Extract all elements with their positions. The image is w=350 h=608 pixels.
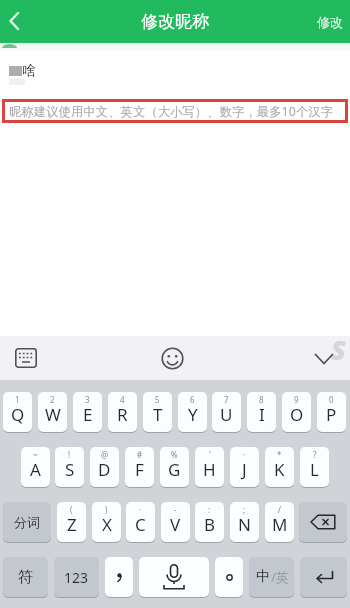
button[interactable]: /	[265, 502, 294, 542]
staticText: #	[137, 449, 143, 460]
button[interactable]	[306, 344, 342, 374]
staticText: :	[208, 504, 211, 515]
staticText: N	[238, 513, 251, 536]
staticText: T	[153, 403, 163, 426]
staticText: M	[272, 513, 288, 536]
button[interactable]: 修改	[306, 0, 350, 43]
staticText: 6	[190, 394, 195, 405]
staticText: ;	[243, 504, 246, 515]
staticText: /	[278, 504, 281, 515]
staticText: 9	[294, 394, 299, 405]
staticText: F	[135, 458, 144, 481]
button[interactable]	[139, 557, 209, 597]
staticText: V	[170, 513, 181, 536]
button[interactable]	[0, 0, 38, 43]
staticText: 8	[259, 394, 264, 405]
staticText: G	[168, 458, 181, 481]
staticText: %	[171, 449, 178, 460]
staticText: 啥	[22, 62, 36, 80]
staticText: 1	[15, 394, 20, 405]
staticText: 4	[120, 394, 125, 405]
button[interactable]: 6	[178, 392, 207, 432]
staticText: K	[274, 458, 285, 481]
button[interactable]: 符	[3, 557, 48, 597]
staticText: ·	[243, 449, 246, 460]
button[interactable]: -	[161, 502, 190, 542]
button[interactable]: #	[125, 447, 154, 487]
button[interactable]	[300, 557, 347, 597]
staticText: W	[45, 403, 61, 426]
staticText: *	[277, 449, 282, 460]
staticText: S	[65, 458, 75, 481]
staticText: -	[174, 504, 177, 515]
staticText: '	[209, 449, 211, 460]
staticText: 123	[64, 568, 89, 587]
button[interactable]: 8	[247, 392, 276, 432]
button[interactable]	[0, 53, 350, 89]
staticText: Q	[11, 403, 25, 426]
button[interactable]: 7	[212, 392, 241, 432]
staticText: R	[117, 403, 128, 426]
button[interactable]: *	[265, 447, 294, 487]
button[interactable]: 0	[317, 392, 346, 432]
staticText: (	[70, 504, 73, 515]
staticText: )	[105, 504, 108, 515]
button[interactable]: 分词	[3, 502, 51, 542]
staticText: E	[83, 403, 93, 426]
button[interactable]: !	[55, 447, 84, 487]
staticText: B	[204, 513, 216, 536]
staticText: 修改昵称	[141, 11, 209, 32]
button[interactable]: ·	[126, 502, 155, 542]
staticText: 0	[329, 394, 334, 405]
button[interactable]: ·	[230, 447, 259, 487]
button[interactable]: )	[92, 502, 121, 542]
staticText: 符	[18, 568, 33, 587]
staticText: 中	[256, 568, 270, 586]
staticText: @	[101, 449, 109, 460]
staticText: Y	[188, 403, 198, 426]
staticText: 2	[50, 394, 55, 405]
staticText: U	[220, 403, 233, 426]
staticText: A	[30, 458, 41, 481]
button[interactable]	[215, 557, 243, 597]
button[interactable]: ~	[21, 447, 50, 487]
button[interactable]: 4	[108, 392, 137, 432]
button[interactable]: @	[90, 447, 119, 487]
button[interactable]: ?	[300, 447, 329, 487]
button[interactable]: 123	[54, 557, 99, 597]
button[interactable]	[8, 341, 44, 375]
button[interactable]	[155, 341, 190, 375]
button[interactable]: 1	[3, 392, 32, 432]
staticText: H	[203, 458, 216, 481]
button[interactable]: 3	[73, 392, 102, 432]
staticText: ~	[33, 449, 38, 460]
staticText: J	[242, 458, 247, 481]
staticText: C	[135, 513, 146, 536]
button[interactable]: 中	[249, 557, 294, 597]
button[interactable]: '	[195, 447, 224, 487]
staticText: /英	[271, 568, 289, 586]
button[interactable]	[105, 557, 133, 597]
button[interactable]	[299, 502, 347, 542]
staticText: 修改	[317, 14, 343, 30]
button[interactable]: :	[195, 502, 224, 542]
staticText: S	[331, 331, 346, 368]
staticText: 7	[224, 394, 229, 405]
staticText: ·	[139, 504, 142, 515]
staticText: 3	[85, 394, 90, 405]
staticText: 分词	[14, 514, 40, 530]
button[interactable]: 9	[282, 392, 311, 432]
staticText: L	[310, 458, 319, 481]
button[interactable]: 2	[38, 392, 67, 432]
button[interactable]: %	[160, 447, 189, 487]
staticText: 昵称建议使用中文、英文（大小写）、数字，最多10个汉字	[9, 103, 333, 120]
button[interactable]: (	[57, 502, 86, 542]
staticText: D	[98, 458, 111, 481]
staticText: X	[102, 513, 112, 536]
button[interactable]: ;	[230, 502, 259, 542]
staticText: Z	[67, 513, 77, 536]
button[interactable]: 5	[143, 392, 172, 432]
staticText: P	[326, 403, 337, 426]
staticText: O	[290, 403, 304, 426]
staticText: ?	[313, 449, 317, 460]
